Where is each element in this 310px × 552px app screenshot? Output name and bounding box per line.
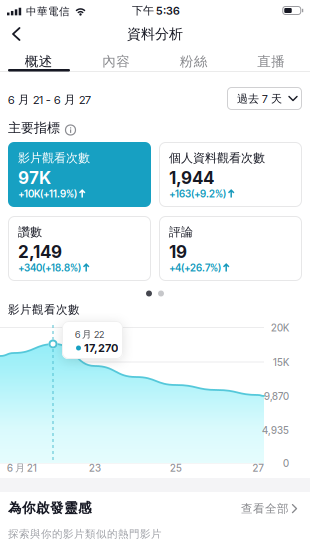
staticText: 0 (283, 457, 289, 470)
button[interactable]: 查看全部 (241, 501, 298, 516)
staticText: 9,870 (264, 390, 289, 403)
staticText: +10K(+11.9%) (18, 187, 77, 200)
button[interactable]: 粉絲 (155, 51, 232, 72)
staticText: 為你啟發靈感 (8, 499, 92, 517)
staticText: +163(+9.2%) (169, 187, 226, 200)
staticText: 2,149 (18, 241, 62, 263)
staticText: 19 (169, 241, 187, 263)
staticText: 17,270 (84, 341, 118, 355)
staticText: 23 (89, 462, 101, 474)
button[interactable]: About key metrics (65, 124, 76, 135)
staticText: 中華電信 (26, 4, 70, 18)
button[interactable]: 影片觀看次數 (8, 142, 151, 207)
staticText: 探索與你的影片類似的熱門影片 (8, 527, 162, 541)
staticText: 主要指標 (8, 119, 60, 137)
staticText: 1,944 (169, 167, 214, 189)
button[interactable]: 讚數 (8, 216, 151, 281)
staticText: 查看全部 (241, 501, 289, 516)
staticText: 評論 (169, 224, 193, 240)
staticText: 粉絲 (180, 53, 208, 70)
staticText: +4(+26.7%) (169, 261, 221, 274)
staticText: 個人資料觀看次數 (169, 150, 265, 166)
staticText: 25 (170, 462, 182, 474)
staticText: 影片觀看次數 (18, 150, 90, 166)
staticText: 6 月 22 (75, 328, 104, 341)
button[interactable]: 內容 (77, 51, 155, 72)
staticText: 15K (273, 356, 289, 369)
button[interactable]: 過去 7 天 (227, 87, 302, 110)
staticText: 資料分析 (127, 25, 183, 43)
staticText: 直播 (257, 53, 285, 70)
button[interactable]: 概述 (0, 51, 77, 72)
button[interactable]: 直播 (232, 51, 310, 72)
button[interactable]: 個人資料觀看次數 (159, 142, 302, 207)
button[interactable]: Back (0, 20, 30, 48)
staticText: 內容 (102, 53, 130, 70)
staticText: 20K (271, 321, 289, 334)
staticText: 影片觀看次數 (8, 302, 80, 317)
staticText: 下午 5:36 (132, 3, 180, 18)
staticText: 4,935 (262, 424, 289, 437)
staticText: 讚數 (18, 224, 42, 240)
staticText: +340(+18.8%) (18, 261, 81, 274)
staticText: 6 月 21 - 6 月 27 (8, 92, 91, 107)
staticText: 97K (18, 167, 51, 189)
button[interactable]: 評論 (159, 216, 302, 281)
staticText: 概述 (25, 53, 53, 70)
staticText: 過去 7 天 (237, 91, 282, 106)
staticText: 6 月 21 (7, 461, 37, 475)
staticText: 27 (252, 462, 263, 474)
